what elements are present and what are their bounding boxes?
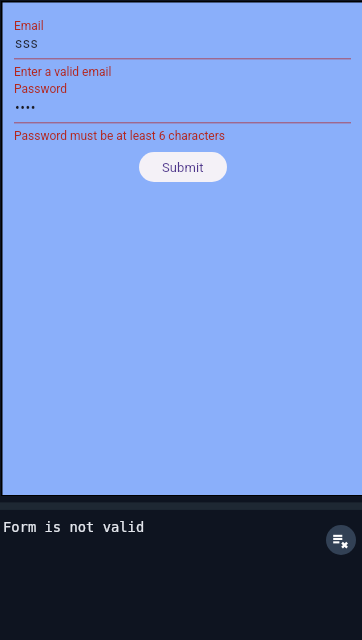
button[interactable]: Submit <box>139 152 227 182</box>
staticText: Form is not valid <box>3 519 145 535</box>
button[interactable]: Clear log <box>326 525 356 555</box>
staticText: Enter a valid email <box>14 65 112 79</box>
staticText: •••• <box>15 100 36 116</box>
staticText: Password must be at least 6 characters <box>14 129 225 143</box>
staticText: Submit <box>162 160 204 175</box>
staticText: sss <box>15 35 39 51</box>
staticText: Password <box>14 82 68 96</box>
staticText: Email <box>14 19 44 33</box>
